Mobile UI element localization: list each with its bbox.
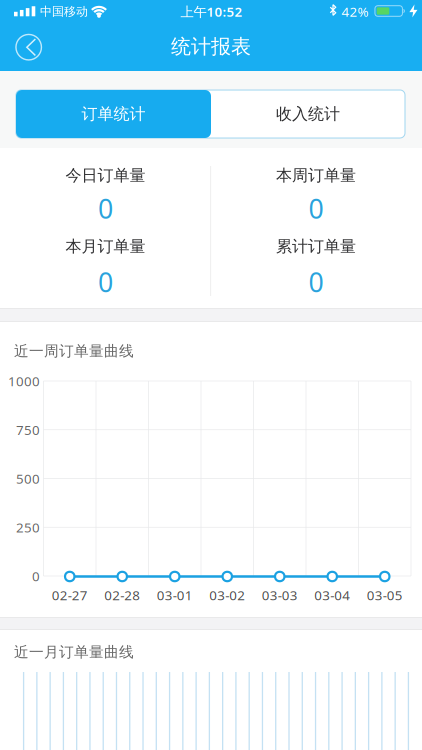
staticText: 02-28 (104, 586, 140, 604)
staticText: 03-03 (262, 586, 298, 604)
staticText: 统计报表 (171, 34, 251, 59)
staticText: 42% (341, 3, 368, 20)
staticText: 02-27 (52, 586, 88, 604)
staticText: 0 (98, 191, 113, 226)
staticText: 0 (308, 264, 323, 300)
button[interactable]: 订单统计 (16, 90, 211, 138)
staticText: 中国移动 (40, 4, 88, 19)
staticText: 0 (32, 567, 40, 585)
staticText: 03-02 (209, 586, 245, 604)
staticText: 订单统计 (81, 104, 145, 124)
staticText: 0 (98, 264, 113, 300)
staticText: 累计订单量 (276, 237, 356, 256)
staticText: 1000 (8, 372, 40, 390)
staticText: 今日订单量 (65, 166, 145, 185)
staticText: 本周订单量 (276, 166, 356, 185)
staticText: 250 (16, 518, 40, 536)
staticText: 本月订单量 (65, 237, 145, 256)
staticText: 收入统计 (276, 104, 340, 124)
button[interactable]: 收入统计 (211, 90, 405, 138)
staticText: 03-01 (157, 586, 193, 604)
staticText: 0 (308, 191, 323, 226)
button[interactable] (16, 34, 41, 60)
staticText: 上午10:52 (180, 3, 242, 20)
staticText: 近一月订单量曲线 (14, 643, 134, 661)
staticText: 750 (16, 421, 40, 439)
staticText: 500 (16, 470, 40, 487)
staticText: 03-04 (314, 586, 350, 604)
staticText: 03-05 (367, 586, 403, 604)
staticText: 近一周订单量曲线 (14, 342, 134, 360)
